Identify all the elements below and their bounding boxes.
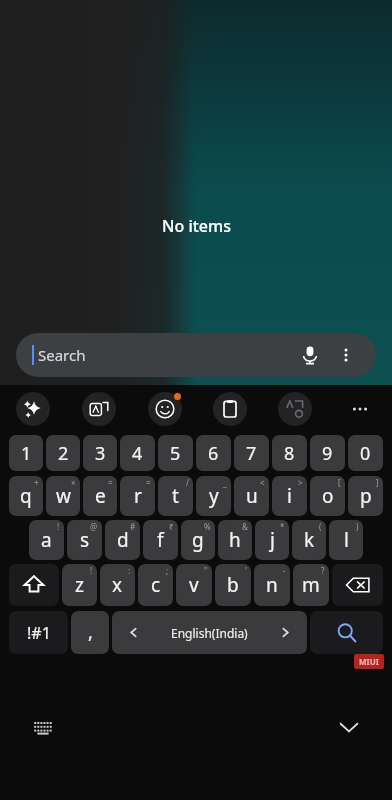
staticText: k [304,527,315,553]
button[interactable]: f [143,520,178,560]
staticText: d [117,527,129,553]
button[interactable]: c [138,564,173,606]
staticText: !#1 [27,622,51,644]
staticText: v [189,572,199,598]
staticText: n [266,572,278,598]
staticText: % [204,521,211,532]
button[interactable]: 6 [196,435,231,471]
staticText: r [134,483,142,509]
button[interactable]: g [181,520,215,560]
button[interactable]: j [255,520,289,560]
staticText: ? [321,565,325,576]
staticText: o [322,483,334,509]
staticText: u [246,483,258,509]
staticText: t [172,483,179,509]
button[interactable]: Clipboard [197,385,262,433]
button[interactable]: o [310,476,345,516]
staticText: = [146,477,151,488]
button[interactable]: p [348,476,383,516]
staticText: a [41,527,52,553]
staticText: - [283,565,286,576]
staticText: y [209,483,219,509]
button[interactable]: 4 [120,435,155,471]
staticText: [ [338,477,341,488]
button[interactable]: 0 [348,435,383,471]
button[interactable]: e [83,476,117,516]
staticText: * [280,521,285,532]
staticText: l [344,527,349,553]
button[interactable]: AI assist [0,385,66,433]
button[interactable]: v [176,564,212,606]
button[interactable]: 5 [158,435,193,471]
button[interactable]: 9 [310,435,345,471]
button[interactable]: Search [16,333,376,377]
button[interactable]: 1 [9,435,43,471]
button[interactable]: z [62,564,97,606]
button[interactable] [9,564,59,606]
staticText: ) [356,521,359,532]
staticText: c [151,572,161,598]
button[interactable]: h [218,520,252,560]
button[interactable]: English(India) [112,611,307,654]
staticText: No items [162,215,231,237]
staticText: ( [319,521,322,532]
button[interactable]: 8 [272,435,307,471]
staticText: ! [57,521,60,532]
staticText: i [287,483,292,509]
button[interactable]: More options [332,341,360,369]
button[interactable]: m [293,564,329,606]
button[interactable]: Translate [66,385,132,433]
staticText: × [71,477,76,488]
button[interactable]: Emoji [132,385,197,433]
button[interactable]: 7 [234,435,269,471]
staticText: w [56,483,71,509]
button[interactable]: w [46,476,80,516]
button[interactable]: k [292,520,326,560]
staticText: 5 [170,441,181,466]
staticText: = [108,477,113,488]
button[interactable]: 2 [46,435,80,471]
staticText: 0 [360,441,371,466]
button[interactable]: , [71,611,109,654]
button[interactable]: Voice search [294,339,326,371]
staticText: > [298,477,303,488]
button[interactable]: u [234,476,269,516]
staticText: ' [245,565,247,576]
button[interactable]: d [105,520,140,560]
button[interactable]: q [9,476,43,516]
staticText: ; [166,565,169,576]
staticText: Search [38,345,86,365]
staticText: s [80,527,90,553]
button[interactable] [332,564,383,606]
staticText: MIUI [359,656,379,667]
staticText: q [20,483,32,509]
button[interactable]: More [327,385,392,433]
button[interactable]: a [29,520,64,560]
staticText: 4 [132,441,143,466]
staticText: h [229,527,241,553]
button[interactable]: n [254,564,290,606]
button[interactable]: 3 [83,435,117,471]
staticText: < [260,477,265,488]
button[interactable]: i [272,476,307,516]
button[interactable]: Hide keyboard [332,710,366,744]
button[interactable]: l [329,520,363,560]
button[interactable] [310,611,383,654]
staticText: / [186,477,189,488]
button[interactable]: Switch keyboard [26,710,60,744]
staticText: x [112,572,123,598]
staticText: b [227,572,239,598]
button[interactable]: r [120,476,155,516]
staticText: : [128,565,131,576]
button[interactable]: s [67,520,102,560]
staticText: ! [90,565,93,576]
button[interactable]: x [100,564,135,606]
button[interactable]: b [215,564,251,606]
button[interactable]: t [158,476,193,516]
button[interactable]: Transliterate [262,385,327,433]
button[interactable]: y [196,476,231,516]
staticText: @ [90,521,98,532]
staticText: 1 [21,441,32,466]
staticText: 7 [246,441,257,466]
button[interactable]: !#1 [9,611,68,654]
